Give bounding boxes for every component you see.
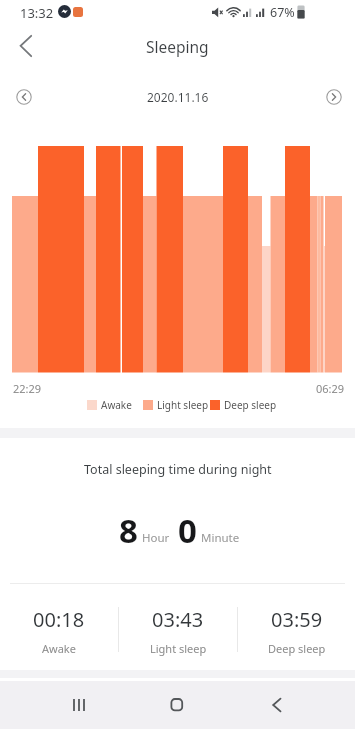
button[interactable] (251, 681, 299, 729)
staticText: 67% (270, 4, 295, 21)
staticText: Light sleep (157, 398, 209, 412)
staticText: Awake (101, 398, 132, 412)
staticText: Hour (142, 530, 170, 546)
staticText: 8 (119, 508, 138, 553)
staticText: 03:59 (271, 606, 323, 633)
staticText: 22:29 (13, 381, 42, 396)
staticText: Deep sleep (268, 641, 326, 656)
staticText: 0 (178, 508, 197, 553)
staticText: 03:43 (152, 606, 204, 633)
button[interactable] (4, 28, 48, 64)
staticText: Awake (42, 641, 76, 656)
staticText: 13:32 (20, 4, 54, 22)
staticText: 2020.11.16 (147, 89, 209, 105)
staticText: 00:18 (33, 606, 85, 633)
staticText: Deep sleep (224, 398, 277, 412)
staticText: Minute (201, 530, 240, 546)
staticText: Total sleeping time during night (84, 461, 272, 478)
button[interactable] (10, 83, 38, 111)
button[interactable] (55, 681, 103, 729)
button[interactable] (153, 681, 201, 729)
staticText: Sleeping (146, 36, 209, 57)
button[interactable] (320, 83, 348, 111)
staticText: Light sleep (150, 641, 207, 656)
staticText: 06:29 (316, 381, 345, 396)
